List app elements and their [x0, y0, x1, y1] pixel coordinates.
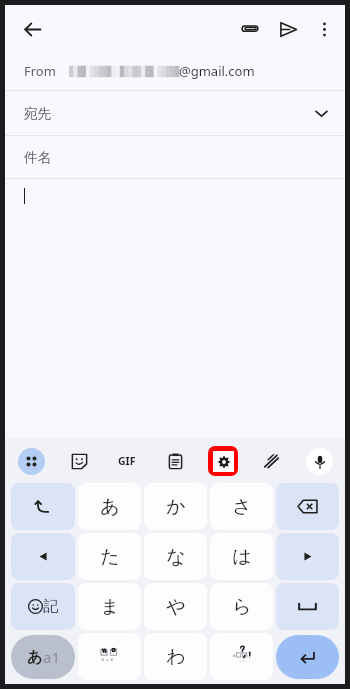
- button[interactable]: Back: [13, 10, 51, 48]
- button[interactable]: Backspace: [276, 483, 339, 530]
- button[interactable]: な: [144, 533, 207, 580]
- button[interactable]: Settings: [205, 443, 241, 479]
- button[interactable]: は: [210, 533, 273, 580]
- button[interactable]: Apps: [13, 443, 49, 479]
- button[interactable]: ら: [210, 583, 273, 630]
- staticText: は: [232, 545, 252, 569]
- button[interactable]: GIF: [109, 443, 145, 479]
- button[interactable]: Send: [269, 10, 307, 48]
- staticText: ま: [100, 595, 120, 619]
- staticText: あ: [27, 648, 43, 667]
- staticText: @gmail.com: [179, 62, 255, 80]
- staticText: ら: [232, 595, 252, 619]
- button[interactable]: Cursor right: [276, 533, 339, 580]
- button[interactable]: Punctuation: [210, 633, 273, 680]
- button[interactable]: Enter: [276, 635, 339, 679]
- button[interactable]: Dakuten: [78, 633, 141, 680]
- staticText: さ: [232, 495, 252, 519]
- button[interactable]: Handwriting: [253, 443, 289, 479]
- button[interactable]: From: [5, 52, 345, 90]
- staticText: た: [100, 545, 120, 569]
- button[interactable]: 記: [11, 583, 75, 630]
- button[interactable]: Space: [276, 583, 339, 630]
- button[interactable]: 件名: [5, 136, 345, 178]
- button[interactable]: あ: [11, 635, 75, 679]
- button[interactable]: Clipboard: [157, 443, 193, 479]
- button[interactable]: 宛先: [5, 91, 345, 135]
- button[interactable]: さ: [210, 483, 273, 530]
- button[interactable]: や: [144, 583, 207, 630]
- staticText: GIF: [118, 454, 136, 468]
- staticText: わ: [166, 645, 186, 669]
- staticText: あ: [100, 495, 120, 519]
- button[interactable]: わ: [144, 633, 207, 680]
- button[interactable]: More options: [307, 12, 341, 46]
- staticText: か: [166, 495, 186, 519]
- button[interactable]: か: [144, 483, 207, 530]
- staticText: 件名: [24, 149, 51, 166]
- button[interactable]: あ: [78, 483, 141, 530]
- staticText: 宛先: [24, 105, 51, 122]
- button[interactable]: Voice input: [301, 443, 337, 479]
- staticText: From: [24, 62, 56, 80]
- button[interactable]: Cursor left: [11, 533, 75, 580]
- button[interactable]: Attach file: [231, 10, 269, 48]
- staticText: 記: [43, 597, 58, 616]
- staticText: a1: [43, 647, 60, 667]
- button[interactable]: Stickers: [61, 443, 97, 479]
- button[interactable]: ま: [78, 583, 141, 630]
- button[interactable]: た: [78, 533, 141, 580]
- staticText: や: [166, 595, 186, 619]
- button[interactable]: Undo: [11, 483, 75, 530]
- staticText: な: [166, 545, 186, 569]
